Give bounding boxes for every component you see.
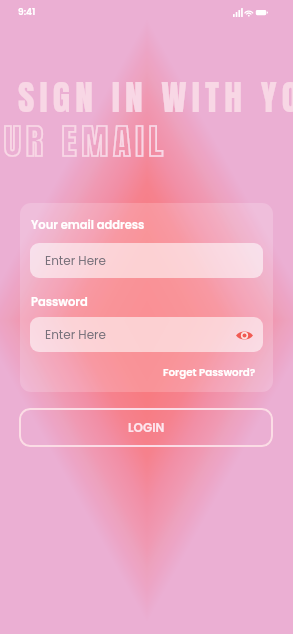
staticText: Enter Here — [45, 252, 106, 269]
button[interactable]: Enter Here — [30, 243, 263, 278]
button[interactable]: LOGIN — [19, 408, 273, 447]
button[interactable]: Show password — [235, 326, 253, 344]
staticText: Enter Here — [45, 326, 106, 343]
staticText: Forget Password? — [163, 365, 256, 379]
staticText: SIGN IN WITH YOU — [18, 70, 293, 123]
staticText: LOGIN — [128, 419, 165, 436]
button[interactable]: Forget Password? — [161, 364, 258, 380]
staticText: UR EMAIL — [4, 114, 169, 167]
button[interactable]: Enter Here — [30, 317, 263, 352]
staticText: Your email address — [31, 217, 145, 233]
staticText: 9:41 — [18, 6, 36, 19]
staticText: Password — [31, 294, 88, 310]
